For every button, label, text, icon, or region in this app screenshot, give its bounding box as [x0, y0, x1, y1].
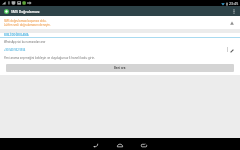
- button[interactable]: Edit phone number: [228, 47, 235, 54]
- button[interactable]: Recent apps: [136, 138, 152, 150]
- button[interactable]: Beni ara: [6, 64, 234, 72]
- staticText: Beni ara: [114, 66, 126, 70]
- button[interactable]: Home: [112, 138, 128, 150]
- staticText: SMS Doğrulaması: [11, 9, 40, 14]
- button[interactable]: Back: [87, 138, 103, 150]
- button[interactable]: Warning: [228, 19, 236, 26]
- staticText: SESLİ DOĞRULAMA: [4, 33, 29, 37]
- staticText: 23:45: [229, 1, 239, 6]
- staticText: Yeni arama seçeneğini bekleyin ve duyduğ…: [4, 56, 95, 60]
- staticText: SMS doğrulaması başarısız oldu.: [4, 19, 47, 23]
- staticText: WhatsApp sizi bu numaradan arar: [4, 40, 46, 44]
- staticText: Lütfen sesli doğrulamasını deneyin.: [4, 23, 51, 27]
- button[interactable]: More options: [228, 6, 240, 16]
- staticText: +90 540 932 5934: [4, 48, 26, 52]
